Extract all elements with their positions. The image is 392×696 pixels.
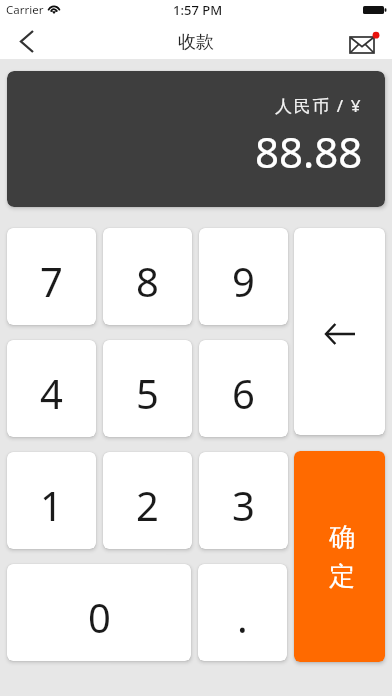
- staticText: 9: [232, 254, 255, 308]
- staticText: 8: [136, 254, 159, 308]
- staticText: 3: [232, 478, 255, 532]
- button[interactable]: 0: [7, 564, 191, 661]
- button[interactable]: 确 定: [294, 451, 385, 662]
- staticText: 1:57 PM: [173, 1, 223, 19]
- button[interactable]: Backspace: [294, 228, 385, 435]
- staticText: Carrier: [6, 2, 44, 18]
- button[interactable]: 4: [7, 340, 96, 437]
- staticText: 88.88: [255, 123, 363, 180]
- button[interactable]: Messages: [342, 20, 392, 59]
- staticText: 1: [40, 478, 63, 532]
- staticText: 人民币 / ¥: [275, 94, 363, 117]
- button[interactable]: 2: [103, 452, 192, 549]
- button[interactable]: .: [198, 564, 287, 661]
- button[interactable]: 1: [7, 452, 96, 549]
- button[interactable]: 6: [199, 340, 288, 437]
- staticText: .: [237, 590, 248, 644]
- staticText: 0: [88, 590, 111, 644]
- staticText: 6: [232, 366, 255, 420]
- staticText: 2: [136, 478, 159, 532]
- staticText: 5: [136, 366, 159, 420]
- staticText: 确 定: [329, 521, 355, 593]
- button[interactable]: 9: [199, 228, 288, 325]
- staticText: 4: [40, 366, 63, 420]
- staticText: 7: [40, 254, 63, 308]
- button[interactable]: Back: [0, 20, 48, 59]
- button[interactable]: 5: [103, 340, 192, 437]
- button[interactable]: 7: [7, 228, 96, 325]
- button[interactable]: 3: [199, 452, 288, 549]
- staticText: 收款: [178, 31, 214, 54]
- button[interactable]: 8: [103, 228, 192, 325]
